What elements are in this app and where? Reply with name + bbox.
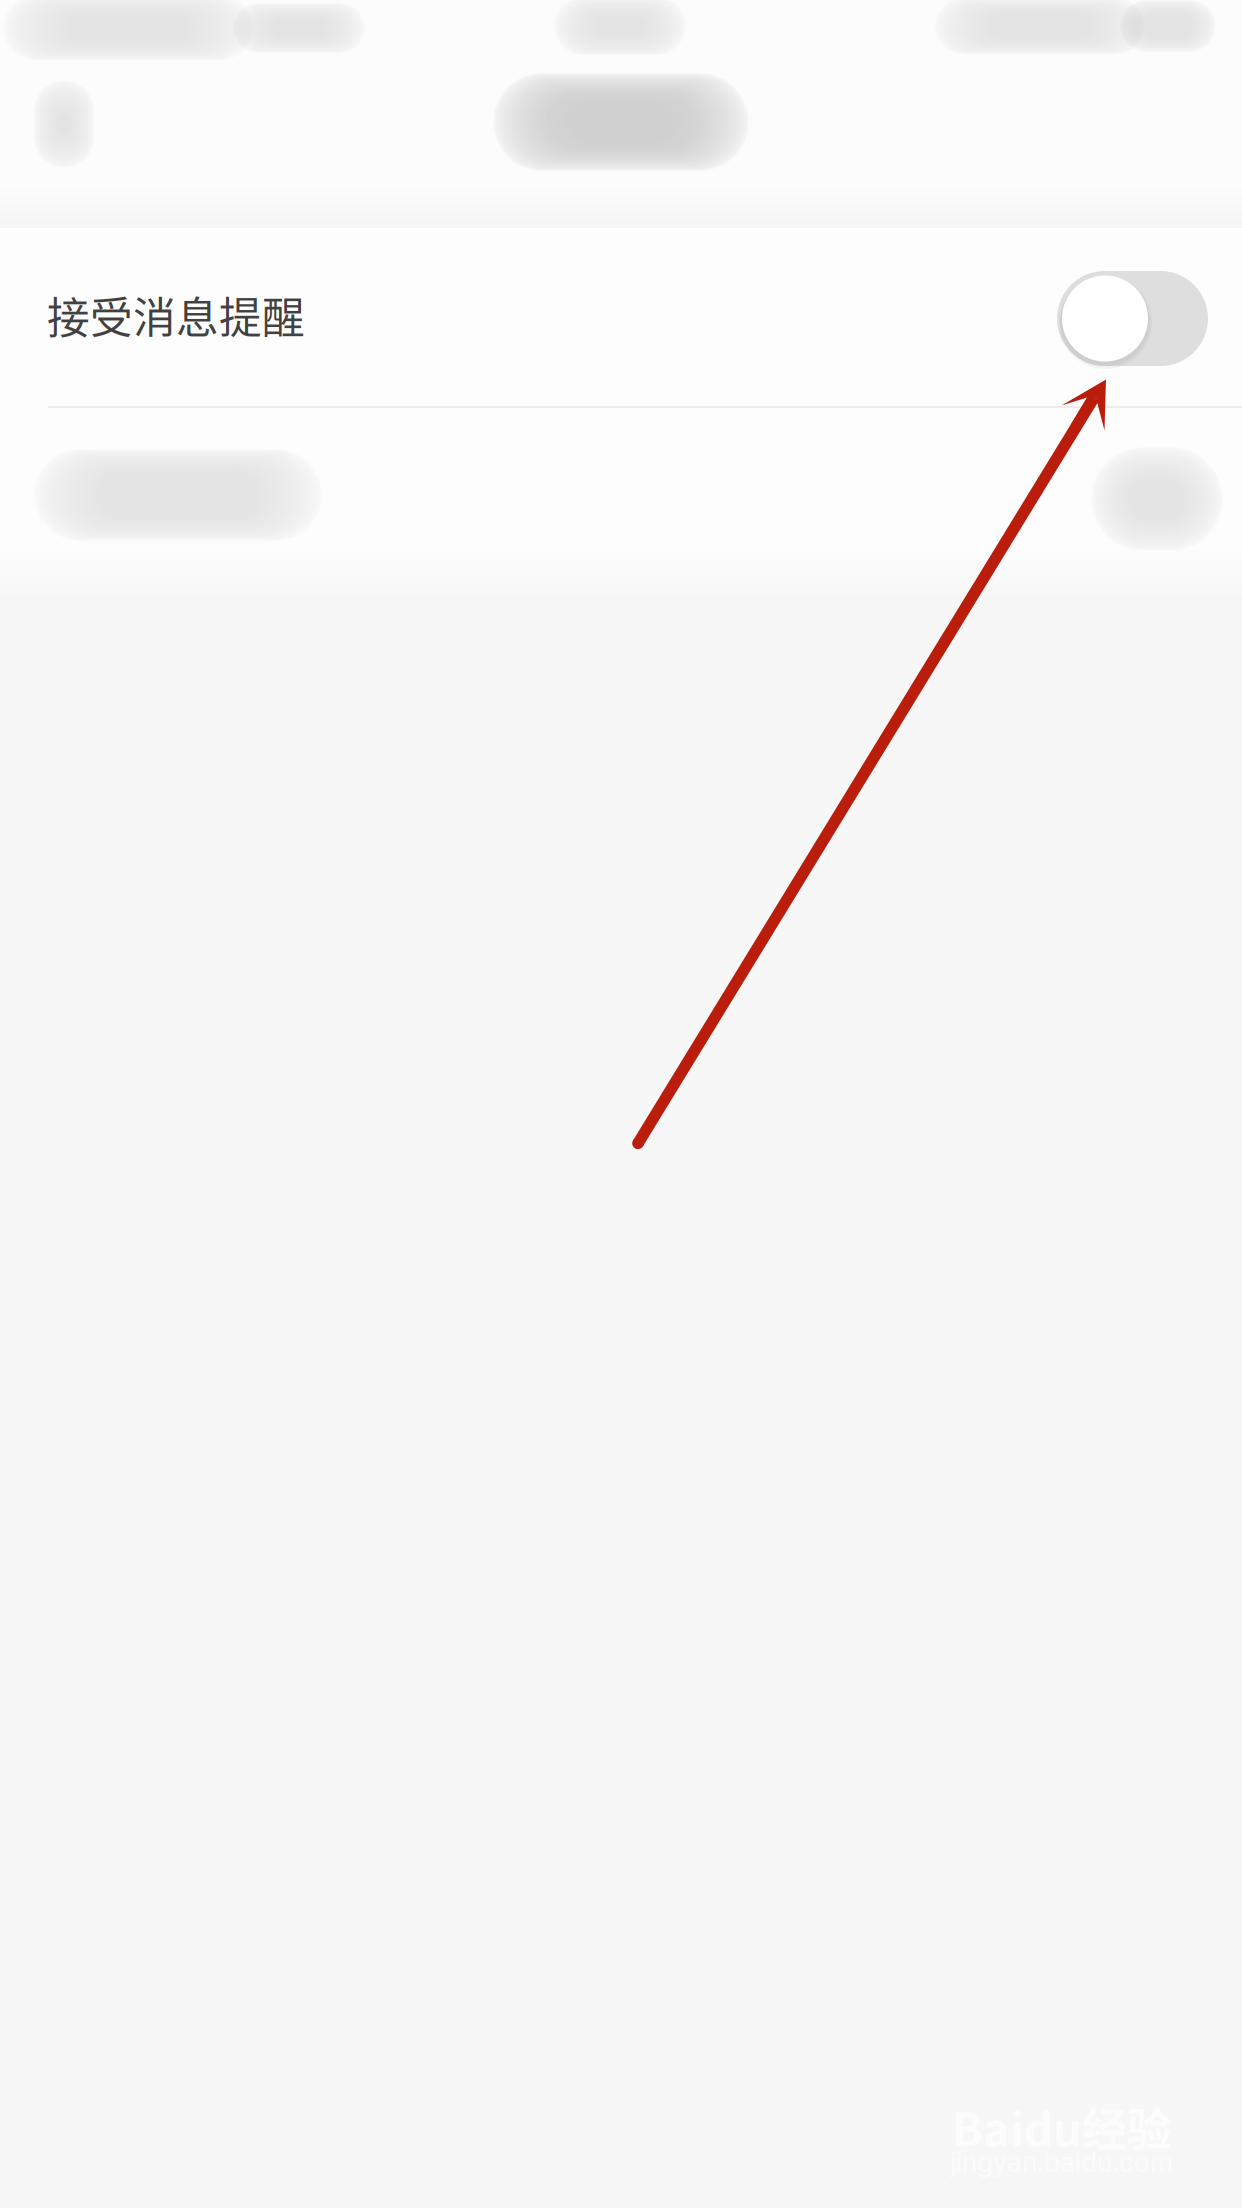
staticText: 接受消息提醒 — [47, 284, 305, 346]
button[interactable]: Back — [0, 0, 150, 150]
button[interactable] — [0, 408, 1242, 573]
button[interactable]: 接受消息提醒 — [0, 228, 1242, 408]
